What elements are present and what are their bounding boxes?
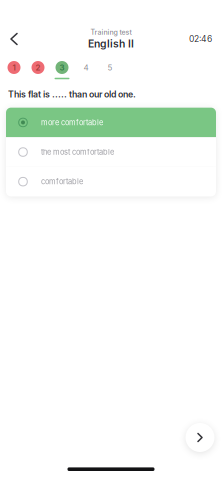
staticText: 1	[12, 63, 15, 72]
staticText: the most comfortable	[41, 147, 114, 156]
staticText: Training test	[90, 28, 131, 36]
button[interactable]: 4	[74, 60, 98, 82]
button[interactable]: 1	[2, 60, 26, 82]
staticText: 3	[59, 63, 64, 72]
staticText: 5	[107, 63, 112, 72]
button[interactable]: more comfortable	[6, 108, 216, 137]
button[interactable]: 5	[98, 60, 122, 82]
staticText: This flat is ..... than our old one.	[8, 89, 136, 100]
staticText: comfortable	[41, 177, 83, 186]
button[interactable]: Next question	[185, 423, 214, 452]
staticText: English II	[88, 37, 134, 50]
button[interactable]: 3	[50, 60, 74, 82]
staticText: 2	[35, 63, 40, 72]
staticText: 4	[83, 63, 88, 72]
staticText: more comfortable	[41, 118, 103, 127]
staticText: 02:46	[189, 34, 212, 44]
button[interactable]: 2	[26, 60, 50, 82]
button[interactable]: Back	[3, 28, 25, 50]
button[interactable]: the most comfortable	[6, 137, 216, 167]
button[interactable]: comfortable	[6, 167, 216, 196]
